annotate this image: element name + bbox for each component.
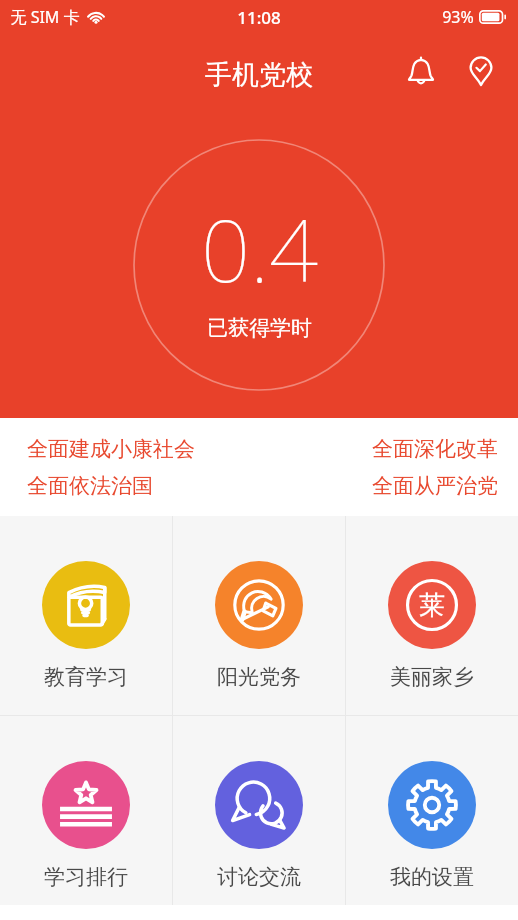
staticText: 全面从严治党 — [372, 473, 498, 499]
staticText: 阳光党务 — [217, 664, 301, 690]
button[interactable]: 我的设置 — [346, 716, 518, 905]
button[interactable]: 教育学习 — [0, 516, 172, 715]
staticText: 全面依法治国 — [27, 473, 153, 499]
button[interactable]: 莱 — [346, 516, 518, 715]
button[interactable]: 阳光党务 — [173, 516, 345, 715]
staticText: 已获得学时 — [207, 315, 312, 341]
staticText: 莱 — [419, 589, 445, 622]
button[interactable]: Sign in location — [456, 46, 506, 96]
staticText: 全面深化改革 — [372, 436, 498, 462]
button[interactable]: 学习排行 — [0, 716, 172, 905]
staticText: 我的设置 — [390, 864, 474, 890]
staticText: 93% — [442, 6, 474, 28]
staticText: 11:08 — [237, 6, 281, 29]
staticText: 手机党校 — [205, 58, 313, 92]
staticText: 学习排行 — [44, 864, 128, 890]
button[interactable]: Notifications — [396, 46, 446, 96]
staticText: 全面建成小康社会 — [27, 436, 195, 462]
staticText: 美丽家乡 — [390, 664, 474, 690]
staticText: 教育学习 — [44, 664, 128, 690]
staticText: 无 SIM 卡 — [10, 6, 80, 28]
staticText: 讨论交流 — [217, 864, 301, 890]
button[interactable]: 讨论交流 — [173, 716, 345, 905]
staticText: 0.4 — [201, 190, 318, 307]
